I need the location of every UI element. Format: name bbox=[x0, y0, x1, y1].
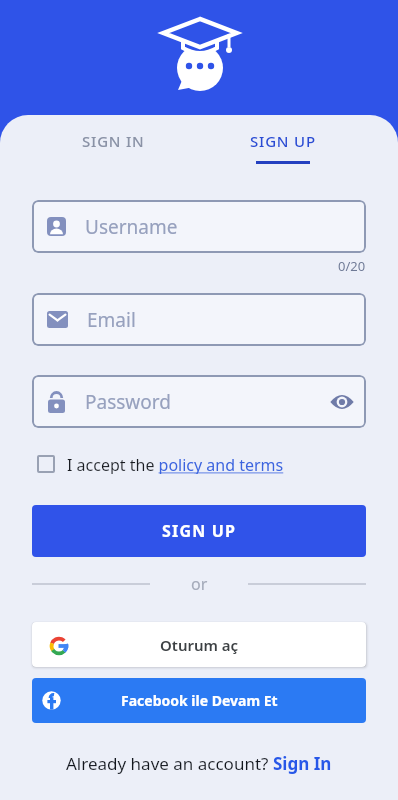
staticText: or bbox=[191, 573, 208, 595]
staticText: Sign In bbox=[273, 752, 332, 775]
button[interactable]: Email bbox=[32, 293, 366, 346]
button[interactable] bbox=[328, 393, 356, 411]
button[interactable]: Sign In bbox=[273, 752, 332, 775]
button[interactable]: SIGN UP bbox=[32, 505, 366, 557]
button[interactable]: Oturum aç bbox=[32, 622, 366, 667]
button[interactable]: SIGN IN bbox=[53, 127, 173, 155]
staticText: SIGN IN bbox=[82, 131, 145, 151]
button[interactable]: Username bbox=[32, 200, 366, 253]
staticText: Password bbox=[85, 389, 171, 415]
staticText: Facebook ile Devam Et bbox=[121, 691, 278, 710]
staticText: Email bbox=[87, 307, 136, 333]
button[interactable]: Password bbox=[32, 375, 366, 428]
staticText: I accept the policy and terms bbox=[67, 454, 284, 474]
button[interactable]: I accept the policy and terms bbox=[37, 454, 284, 474]
staticText: Already have an account? bbox=[66, 752, 273, 775]
staticText: Username bbox=[85, 214, 178, 240]
staticText: SIGN UP bbox=[162, 520, 237, 542]
staticText: Oturum aç bbox=[160, 635, 239, 655]
button[interactable]: Facebook ile Devam Et bbox=[32, 678, 366, 723]
button[interactable]: SIGN UP bbox=[223, 127, 343, 155]
staticText: SIGN UP bbox=[250, 131, 316, 151]
staticText: 0/20 bbox=[338, 257, 366, 275]
